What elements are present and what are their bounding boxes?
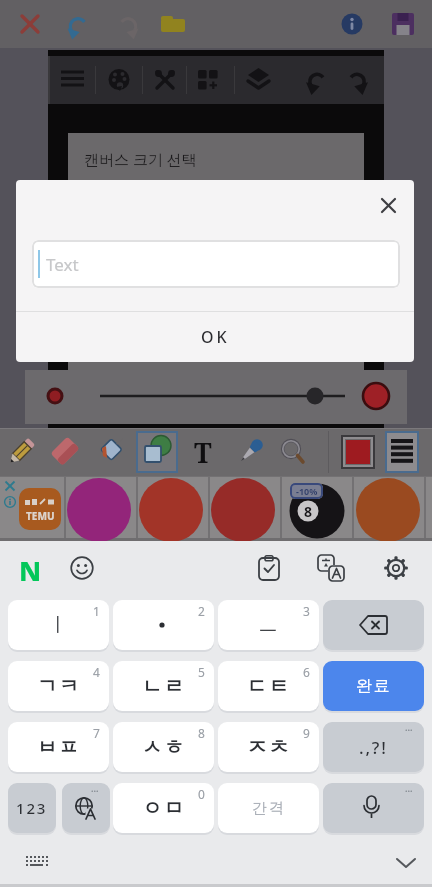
button[interactable]: [392, 13, 414, 35]
button[interactable]: [354, 478, 422, 540]
button[interactable]: ㅅㅎ: [113, 722, 214, 772]
staticText: ㄴㄹ: [142, 674, 186, 699]
button[interactable]: ㅡ: [218, 600, 319, 650]
button[interactable]: [282, 478, 350, 540]
staticText: 완료: [356, 676, 392, 696]
button[interactable]: [16, 552, 44, 584]
button[interactable]: [362, 382, 390, 410]
staticText: 3: [303, 603, 310, 618]
button[interactable]: [4, 480, 16, 492]
staticText: ㅣ: [48, 613, 70, 638]
button[interactable]: [257, 555, 281, 581]
staticText: 간격: [252, 799, 286, 818]
button[interactable]: [210, 478, 278, 540]
button[interactable]: OK: [16, 312, 414, 362]
button[interactable]: [341, 13, 363, 35]
staticText: 2: [198, 603, 205, 618]
button[interactable]: [323, 600, 424, 650]
button[interactable]: [345, 68, 369, 92]
staticText: ㅡ: [258, 613, 280, 638]
staticText: 8: [304, 502, 313, 520]
button[interactable]: [342, 436, 374, 468]
staticText: 1: [93, 603, 100, 618]
button[interactable]: ㄱㅋ: [8, 661, 109, 711]
button[interactable]: [323, 783, 424, 833]
button[interactable]: [44, 385, 66, 407]
staticText: TEMU: [26, 509, 55, 523]
staticText: OK: [201, 326, 230, 348]
staticText: 8: [198, 725, 205, 740]
button[interactable]: ㄷㅌ: [218, 661, 319, 711]
button[interactable]: [18, 12, 42, 36]
staticText: 4: [93, 664, 100, 679]
button[interactable]: .,?!: [323, 722, 424, 772]
button[interactable]: [113, 600, 214, 650]
staticText: 9: [303, 725, 310, 740]
button[interactable]: ㅣ: [8, 600, 109, 650]
button[interactable]: [160, 13, 186, 35]
button[interactable]: [136, 431, 178, 473]
button[interactable]: [197, 69, 219, 91]
button[interactable]: ㅂㅍ: [8, 722, 109, 772]
button[interactable]: ㄴㄹ: [113, 661, 214, 711]
button[interactable]: [115, 12, 141, 38]
button[interactable]: [61, 68, 85, 92]
button[interactable]: [138, 478, 206, 540]
button[interactable]: [394, 855, 418, 871]
button[interactable]: 간격: [218, 783, 319, 833]
button[interactable]: [154, 69, 176, 91]
staticText: -10%: [296, 485, 318, 497]
staticText: N: [19, 552, 42, 584]
button[interactable]: [385, 431, 419, 473]
button[interactable]: [32, 240, 400, 288]
button[interactable]: [305, 68, 329, 92]
button[interactable]: [108, 69, 130, 91]
staticText: 0: [198, 786, 205, 801]
staticText: ㅅㅎ: [142, 735, 186, 760]
staticText: Text: [46, 253, 79, 276]
staticText: 123: [16, 798, 48, 818]
button[interactable]: [70, 556, 94, 580]
button[interactable]: [247, 68, 270, 92]
staticText: 6: [303, 664, 310, 679]
button[interactable]: [62, 783, 110, 833]
button[interactable]: [381, 198, 397, 214]
button[interactable]: ㅈㅊ: [218, 722, 319, 772]
button[interactable]: [188, 432, 218, 472]
button[interactable]: [236, 437, 266, 467]
staticText: ···: [91, 784, 99, 796]
staticText: ㅈㅊ: [247, 735, 291, 760]
button[interactable]: [278, 437, 308, 467]
staticText: ㅂㅍ: [37, 735, 81, 760]
button[interactable]: [4, 496, 16, 508]
staticText: ···: [405, 723, 413, 735]
button[interactable]: [383, 555, 409, 581]
button[interactable]: [25, 855, 49, 871]
button[interactable]: [5, 436, 37, 468]
staticText: .,?!: [359, 736, 388, 759]
staticText: ㄷㅌ: [247, 674, 291, 699]
button[interactable]: [318, 555, 345, 582]
button[interactable]: ㅇㅁ: [113, 783, 214, 833]
staticText: 캔버스 크기 선택: [84, 149, 197, 169]
staticText: ㅇㅁ: [142, 796, 186, 821]
staticText: ㄱㅋ: [37, 674, 81, 699]
button[interactable]: [66, 478, 134, 540]
button[interactable]: [52, 438, 80, 466]
button[interactable]: 123: [8, 783, 56, 833]
button[interactable]: [65, 12, 91, 38]
button[interactable]: [19, 488, 61, 530]
staticText: 5: [198, 664, 205, 679]
staticText: 7: [93, 725, 100, 740]
button[interactable]: 완료: [323, 661, 424, 711]
staticText: T: [194, 434, 212, 471]
staticText: ···: [405, 784, 413, 796]
button[interactable]: [96, 436, 126, 466]
